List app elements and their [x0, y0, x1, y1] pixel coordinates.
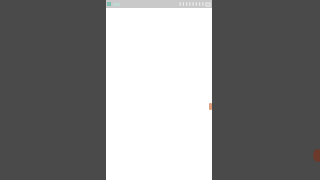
button[interactable] [106, 8, 212, 180]
other: Edge marker [209, 103, 212, 110]
